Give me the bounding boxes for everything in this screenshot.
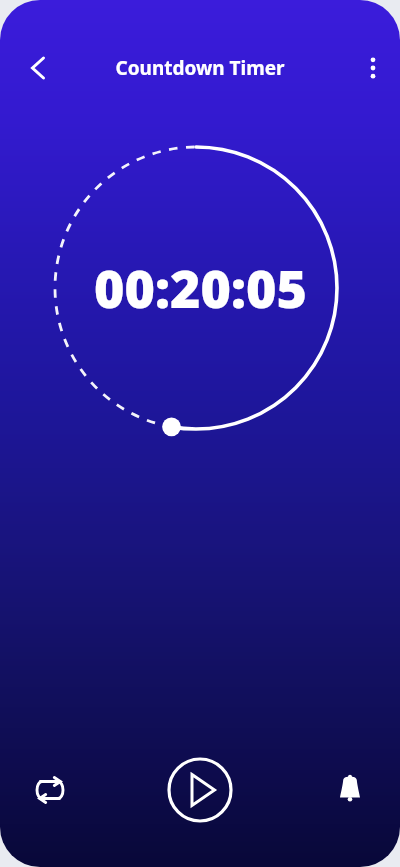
staticText: 00:20:05 — [94, 252, 307, 323]
button[interactable]: Alarm sound — [324, 764, 376, 816]
button[interactable]: Back — [18, 46, 62, 90]
button[interactable]: More options — [352, 46, 394, 90]
staticText: Countdown Timer — [115, 55, 285, 81]
button[interactable]: Repeat — [24, 764, 76, 816]
button[interactable]: Start timer — [164, 754, 236, 826]
